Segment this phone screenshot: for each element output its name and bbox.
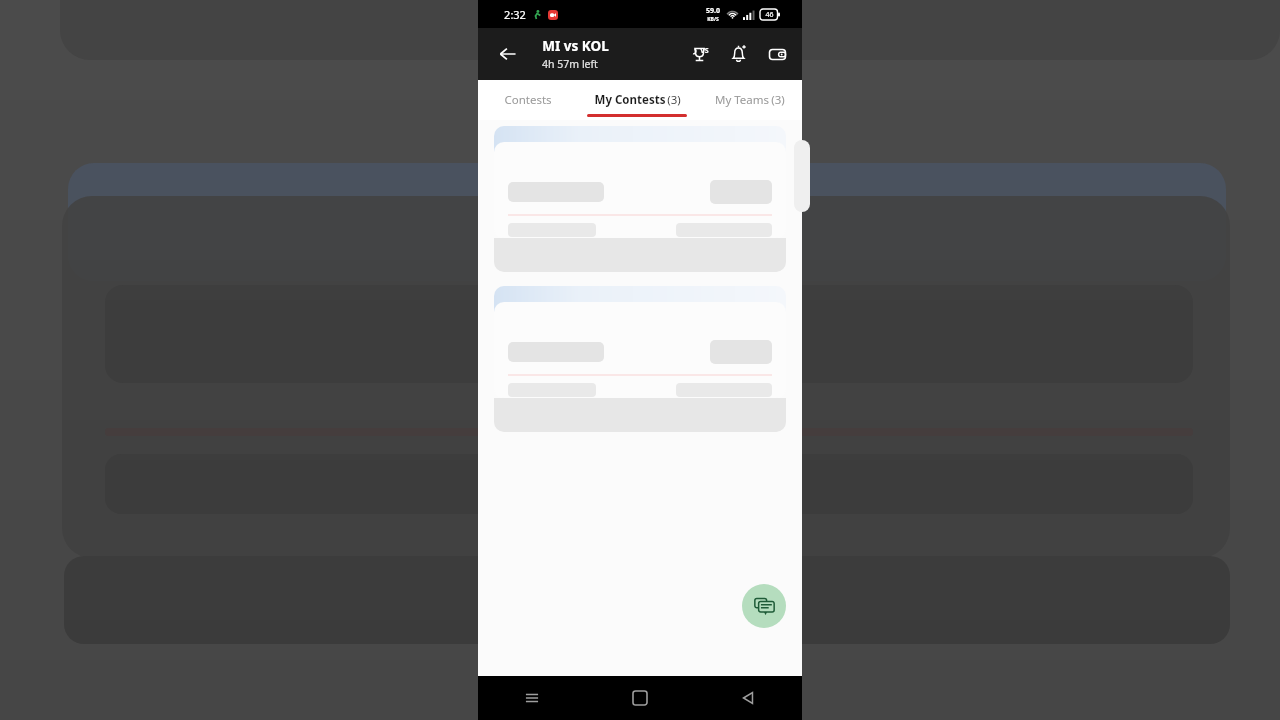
staticText: 59.0: [706, 6, 720, 16]
button[interactable]: Wallet: [762, 39, 792, 69]
staticText: My Teams: [713, 92, 771, 108]
button[interactable]: Chat: [742, 584, 786, 628]
staticText: 4h 57m left: [542, 57, 598, 71]
button[interactable]: [494, 126, 786, 272]
button[interactable]: My Contests: [578, 80, 696, 120]
staticText: 2:32: [504, 7, 526, 22]
button[interactable]: My Teams: [696, 80, 802, 120]
staticText: (3): [667, 92, 681, 108]
button[interactable]: Leaderboard: [684, 39, 714, 69]
staticText: Contests: [504, 92, 552, 108]
button[interactable]: Notifications: [723, 39, 753, 69]
staticText: MI vs KOL: [542, 37, 609, 55]
button[interactable]: Home: [586, 676, 694, 720]
button[interactable]: Contests: [478, 80, 578, 120]
button[interactable]: Recents: [478, 676, 586, 720]
staticText: My Contests: [593, 92, 667, 108]
staticText: VS: [700, 46, 709, 56]
staticText: KB/S: [707, 16, 719, 23]
button[interactable]: Back: [694, 676, 802, 720]
button[interactable]: Back: [492, 38, 524, 70]
staticText: (3): [771, 92, 785, 108]
staticText: 46: [765, 10, 774, 20]
button[interactable]: [494, 286, 786, 432]
